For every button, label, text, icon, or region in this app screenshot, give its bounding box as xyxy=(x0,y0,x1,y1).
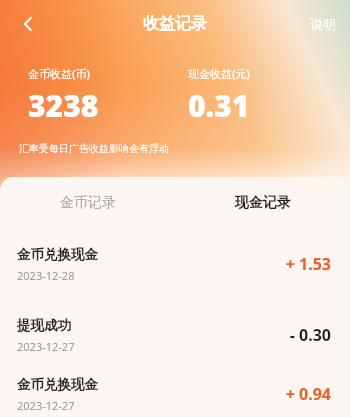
staticText: 汇率受每日广告收益影响会有浮动 xyxy=(19,142,169,155)
button[interactable]: Back xyxy=(8,4,48,44)
staticText: 说明 xyxy=(310,16,336,32)
staticText: 金币收益(币) xyxy=(28,66,90,81)
staticText: - 0.30 xyxy=(289,324,331,346)
staticText: 金币兑换现金 xyxy=(17,246,98,263)
staticText: 提现成功 xyxy=(17,317,71,334)
staticText: + 1.53 xyxy=(285,253,331,275)
button[interactable]: 金币记录 xyxy=(0,177,175,228)
staticText: 0.31 xyxy=(188,85,250,126)
staticText: 2023-12-27 xyxy=(17,398,75,413)
staticText: 2023-12-27 xyxy=(17,339,75,354)
staticText: 金币记录 xyxy=(60,194,116,212)
button[interactable]: 提现成功 xyxy=(0,300,350,370)
staticText: 2023-12-28 xyxy=(17,268,75,283)
button[interactable]: 说明 xyxy=(296,8,350,40)
staticText: 现金记录 xyxy=(235,194,291,212)
button[interactable]: 金币兑换现金 xyxy=(0,371,350,417)
staticText: 3238 xyxy=(28,85,99,126)
staticText: 金币兑换现金 xyxy=(17,376,98,393)
button[interactable]: 现金记录 xyxy=(175,177,350,228)
button[interactable]: 金币兑换现金 xyxy=(0,229,350,299)
staticText: 现金收益(元) xyxy=(188,66,250,81)
staticText: 收益记录 xyxy=(143,14,207,34)
staticText: + 0.94 xyxy=(285,383,331,405)
